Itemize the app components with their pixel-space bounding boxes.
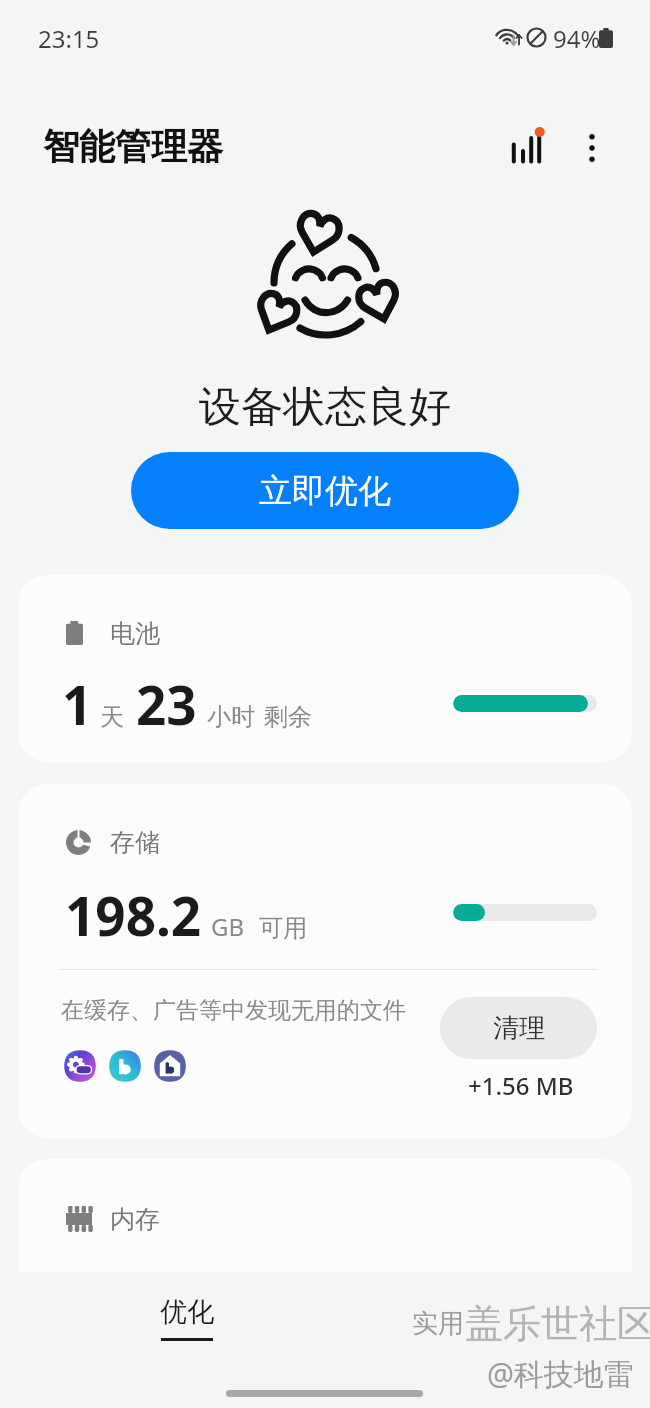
staticText: 天 — [100, 702, 124, 732]
staticText: 94% — [553, 22, 601, 55]
staticText: 设备状态良好 — [0, 381, 650, 434]
button[interactable]: 电池 — [18, 575, 632, 762]
staticText: 1 — [62, 668, 93, 740]
staticText: +1.56 MB — [468, 1069, 574, 1102]
button[interactable]: 清理 — [440, 997, 597, 1059]
staticText: 立即优化 — [259, 470, 391, 512]
staticText: GB — [211, 910, 245, 943]
staticText: 智能管理器 — [43, 124, 223, 169]
staticText: 存储 — [110, 827, 160, 857]
button[interactable]: 内存 — [18, 1159, 632, 1359]
staticText: 盖乐世社区 — [465, 1300, 650, 1348]
staticText: @科技地雷 — [487, 1353, 634, 1394]
button[interactable]: 立即优化 — [131, 452, 519, 529]
staticText: 内存 — [110, 1204, 160, 1234]
staticText: 电池 — [110, 618, 160, 648]
staticText: 198.2 — [65, 879, 202, 951]
button[interactable]: 优化 — [140, 1295, 234, 1341]
staticText: 优化 — [160, 1295, 214, 1329]
button[interactable]: Usage statistics — [492, 112, 564, 184]
staticText: 清理 — [493, 1012, 545, 1045]
staticText: 实用 — [412, 1307, 464, 1340]
staticText: 23:15 — [38, 22, 100, 55]
button[interactable]: 存储 — [18, 784, 632, 1138]
button[interactable]: More options — [556, 112, 628, 184]
staticText: 在缓存、广告等中发现无用的文件 — [61, 996, 406, 1025]
staticText: 可用 — [259, 913, 307, 943]
staticText: 小时 — [207, 702, 255, 732]
staticText: 剩余 — [264, 702, 312, 732]
staticText: 23 — [136, 668, 197, 740]
